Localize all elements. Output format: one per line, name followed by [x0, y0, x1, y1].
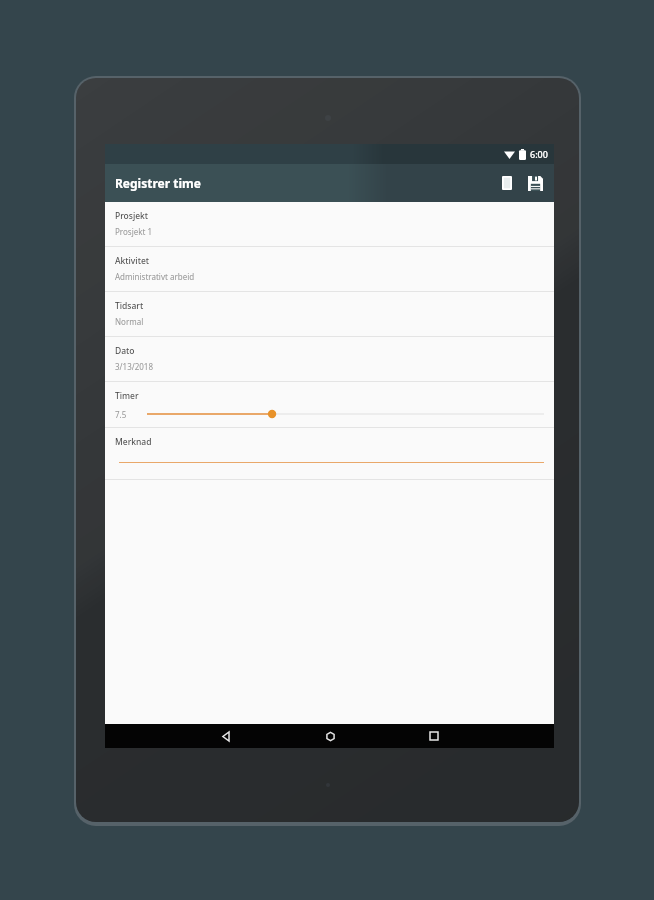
staticText: Normal [115, 316, 144, 327]
button[interactable]: Tidsart [105, 292, 554, 336]
button[interactable]: Delete [494, 170, 520, 196]
staticText: 7.5 [115, 409, 127, 420]
button[interactable]: Timer [105, 382, 554, 427]
button[interactable]: Recent apps [422, 724, 446, 748]
staticText: 6:00 [530, 148, 548, 160]
staticText: Aktivitet [115, 255, 150, 267]
button[interactable]: Hours slider [147, 407, 544, 421]
button[interactable]: Back [214, 724, 238, 748]
staticText: 3/13/2018 [115, 361, 153, 372]
button[interactable]: Save [522, 170, 548, 196]
staticText: Prosjekt [115, 210, 149, 222]
button[interactable]: Home [318, 724, 342, 748]
staticText: Tidsart [115, 300, 144, 312]
staticText: Merknad [115, 436, 152, 448]
button[interactable]: Dato [105, 337, 554, 381]
staticText: Registrer time [115, 175, 201, 191]
button[interactable]: Prosjekt [105, 202, 554, 246]
staticText: Dato [115, 345, 135, 357]
staticText: Administrativt arbeid [115, 271, 195, 282]
staticText: Timer [115, 390, 139, 402]
button[interactable]: Aktivitet [105, 247, 554, 291]
staticText: Prosjekt 1 [115, 226, 153, 237]
button[interactable]: Merknad [105, 428, 554, 479]
